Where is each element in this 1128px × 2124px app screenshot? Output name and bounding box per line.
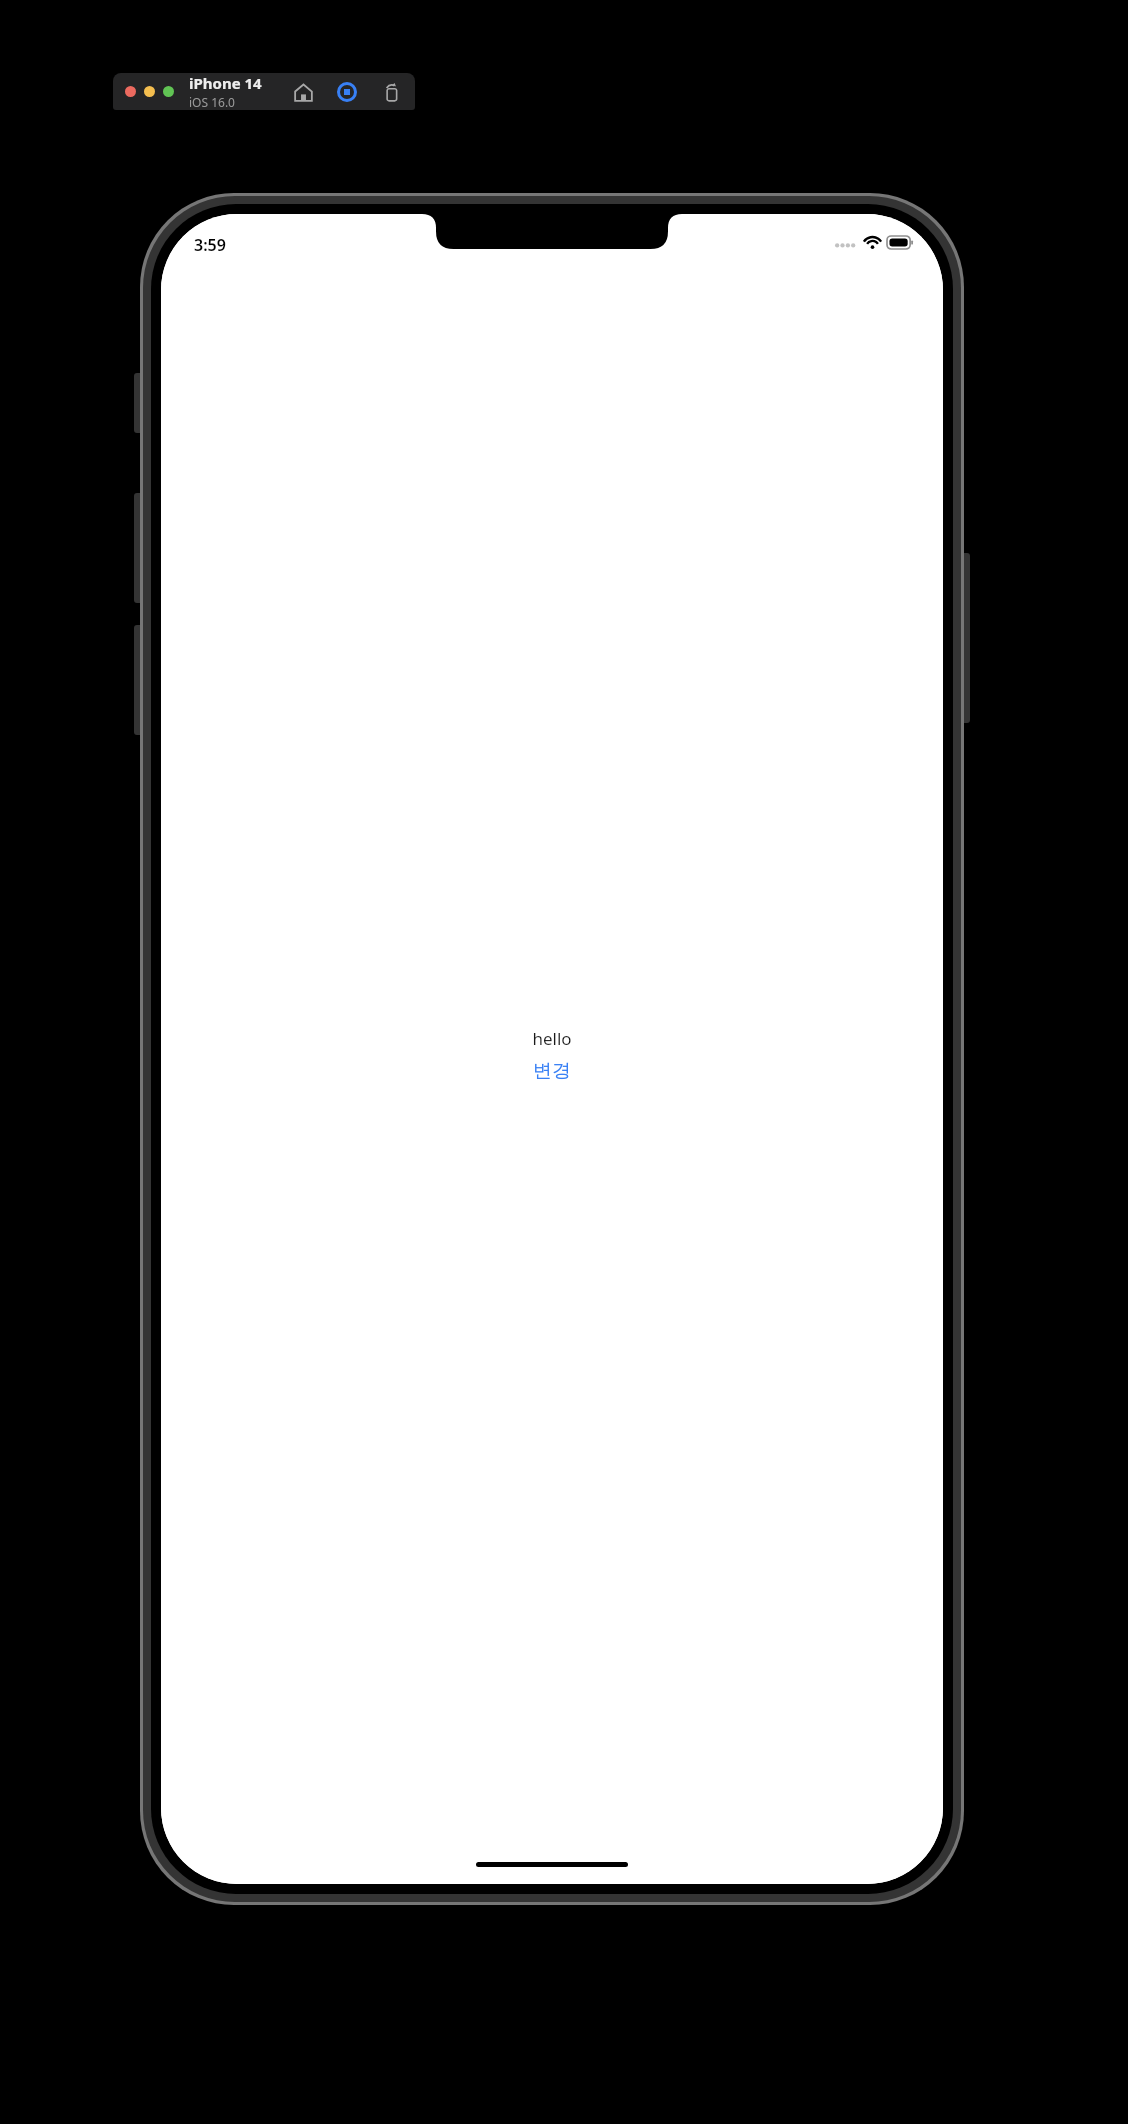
button[interactable]: Record screen [335, 80, 359, 104]
button[interactable]: Minimize [144, 86, 155, 97]
staticText: iOS 16.0 [189, 94, 235, 110]
button[interactable]: Close [125, 86, 136, 97]
button[interactable]: Home [291, 80, 315, 104]
button[interactable]: 변경 [533, 1059, 571, 1083]
staticText: 3:59 [194, 234, 226, 256]
staticText: 변경 [533, 1059, 571, 1083]
staticText: hello [532, 1027, 572, 1050]
staticText: iPhone 14 [189, 73, 262, 93]
button[interactable]: Maximize [163, 86, 174, 97]
button[interactable]: Rotate device [379, 80, 403, 104]
